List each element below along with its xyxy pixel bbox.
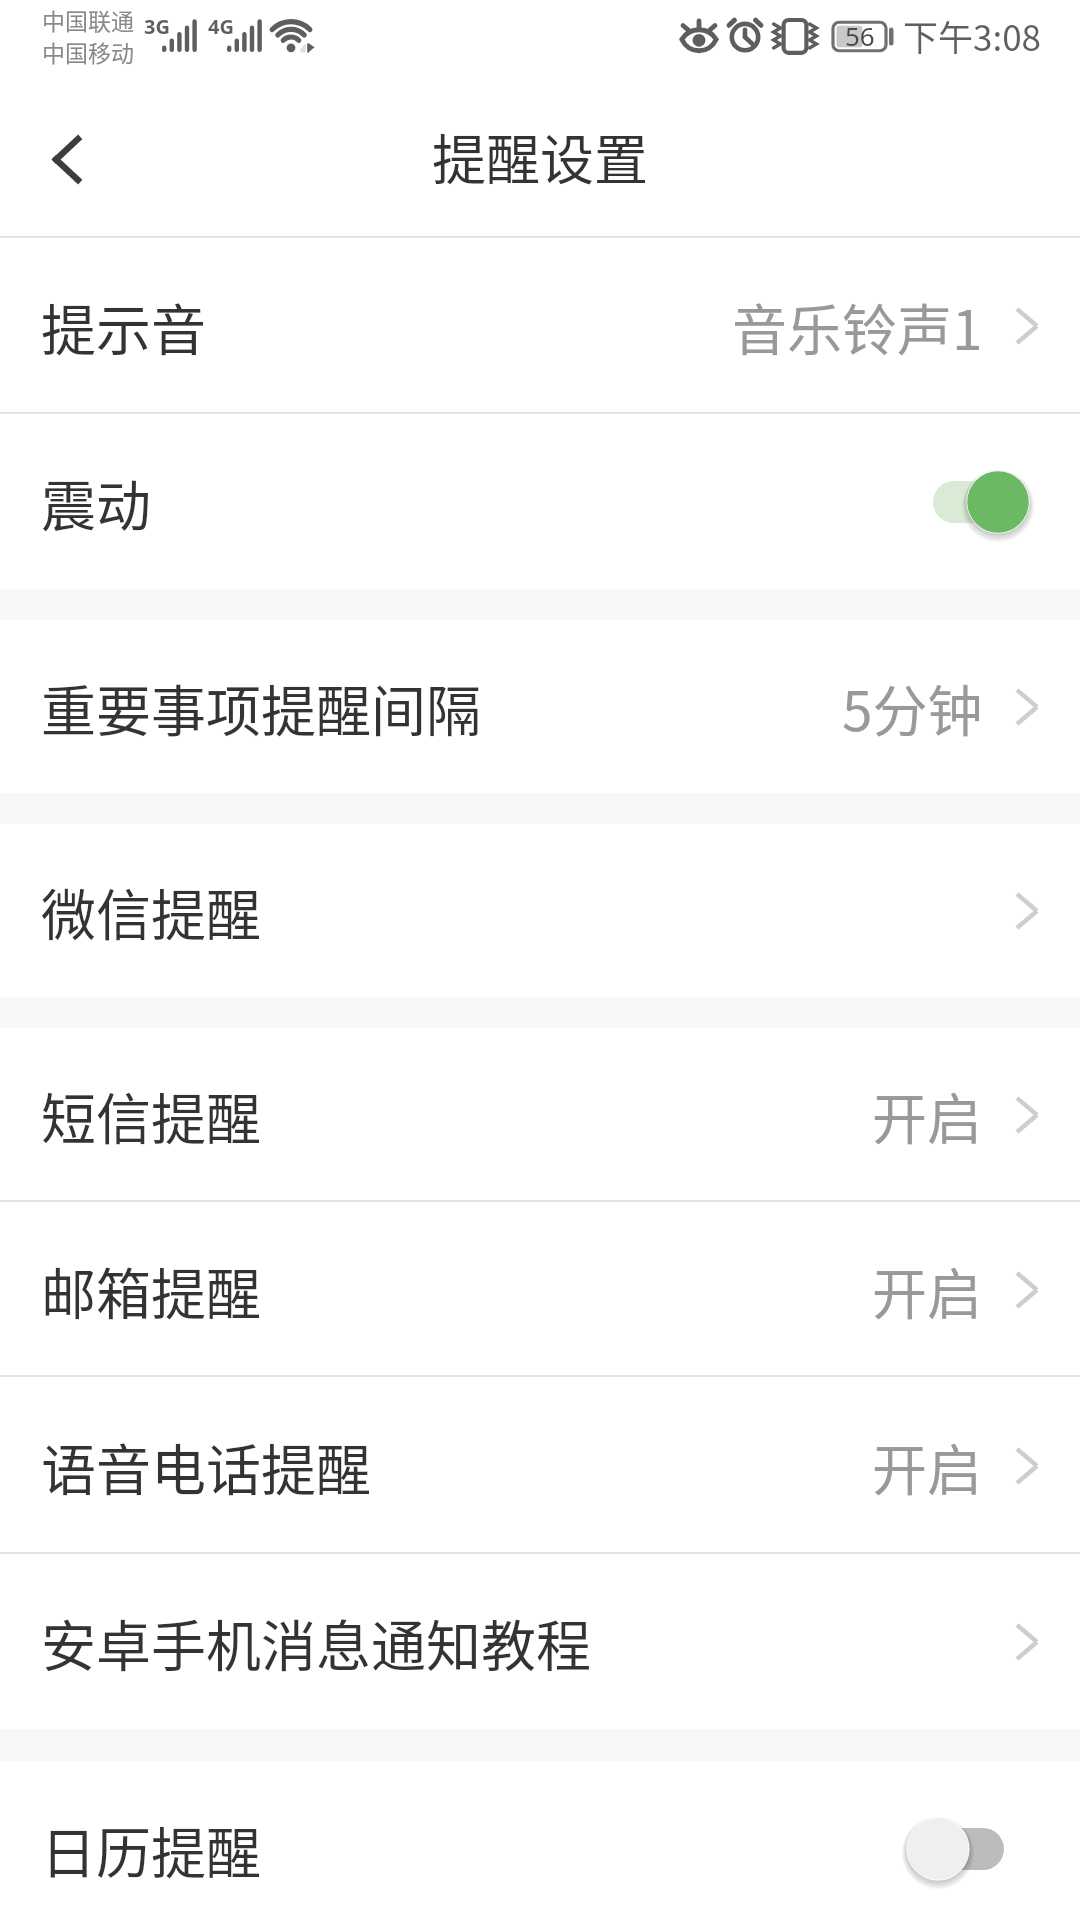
button[interactable]: 重要事项提醒间隔 — [0, 620, 1080, 793]
staticText: 提醒设置 — [432, 117, 648, 195]
button[interactable]: 短信提醒 — [0, 1028, 1080, 1202]
button[interactable]: 安卓手机消息通知教程 — [0, 1554, 1080, 1729]
button[interactable]: 语音电话提醒 — [0, 1377, 1080, 1554]
staticText: 提示音 — [41, 286, 207, 366]
staticText: 短信提醒 — [41, 1075, 262, 1155]
staticText: 日历提醒 — [41, 1809, 262, 1889]
staticText: 中国联通 中国移动 — [42, 3, 134, 68]
staticText: 安卓手机消息通知教程 — [41, 1602, 592, 1682]
staticText: 语音电话提醒 — [41, 1426, 372, 1506]
staticText: 开启 — [872, 1250, 983, 1330]
button[interactable]: 微信提醒 — [0, 824, 1080, 997]
staticText: 开启 — [872, 1426, 983, 1506]
staticText: 56 — [845, 18, 875, 53]
staticText: 5分钟 — [842, 667, 983, 747]
button[interactable]: Vibration off — [932, 1810, 1040, 1888]
button[interactable]: Back — [0, 80, 134, 238]
button[interactable]: 震动 — [0, 414, 1080, 589]
staticText: 微信提醒 — [41, 871, 262, 951]
button[interactable]: 提示音 — [0, 238, 1080, 414]
staticText: 邮箱提醒 — [41, 1250, 262, 1330]
staticText: 音乐铃声1 — [732, 286, 983, 366]
button[interactable]: 邮箱提醒 — [0, 1202, 1080, 1377]
staticText: 重要事项提醒间隔 — [41, 667, 482, 747]
button[interactable]: Vibration on — [932, 463, 1040, 541]
button[interactable]: 日历提醒 — [0, 1761, 1080, 1920]
staticText: 3G — [144, 13, 170, 40]
staticText: 震动 — [41, 462, 152, 542]
staticText: 下午3:08 — [903, 10, 1042, 61]
staticText: 开启 — [872, 1075, 983, 1155]
staticText: 4G — [208, 13, 234, 40]
